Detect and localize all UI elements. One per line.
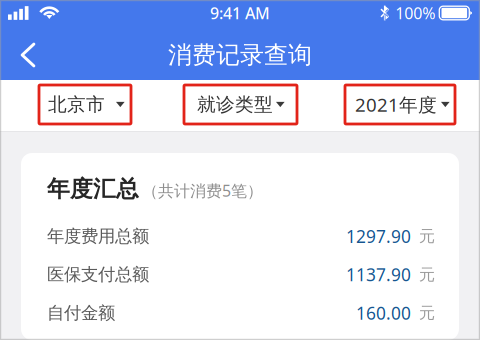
staticText: 160.00 <box>356 301 411 324</box>
button[interactable]: 返回 <box>6 33 50 77</box>
staticText: 1297.90 <box>346 225 411 248</box>
button[interactable]: 北京市 <box>39 85 131 124</box>
staticText: 100% <box>395 2 435 24</box>
staticText: 医保支付总额 <box>47 264 149 285</box>
button[interactable]: 就诊类型 <box>184 85 297 124</box>
staticText: 元 <box>419 226 435 246</box>
staticText: 消费记录查询 <box>168 40 312 70</box>
staticText: 9:41 AM <box>210 2 270 24</box>
staticText: 元 <box>419 303 435 323</box>
staticText: 北京市 <box>48 93 105 116</box>
staticText: 2021年度 <box>355 92 437 117</box>
staticText: 就诊类型 <box>197 93 273 116</box>
staticText: 年度费用总额 <box>47 226 149 247</box>
staticText: （共计消费5笔） <box>142 180 263 201</box>
staticText: 1137.90 <box>346 263 411 286</box>
staticText: 元 <box>419 265 435 284</box>
button[interactable]: 2021年度 <box>345 85 455 124</box>
staticText: 年度汇总 <box>47 175 139 203</box>
staticText: 自付金额 <box>47 302 115 324</box>
